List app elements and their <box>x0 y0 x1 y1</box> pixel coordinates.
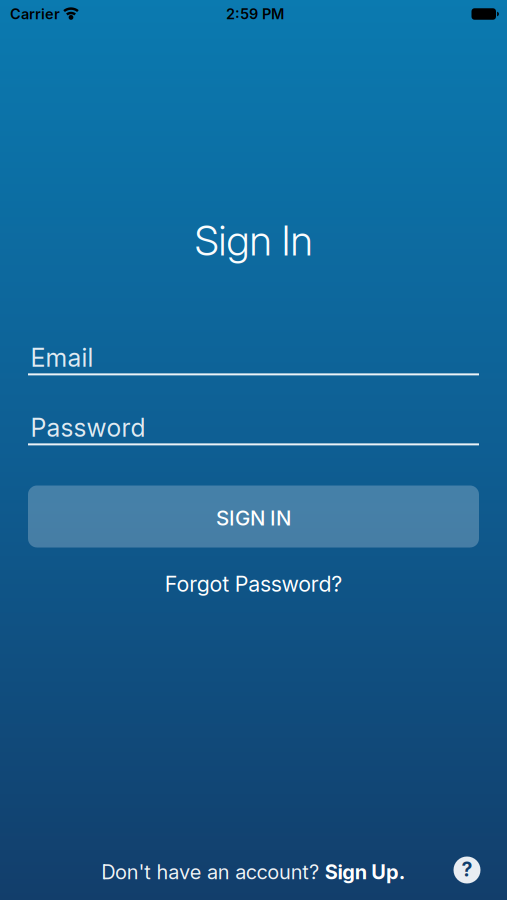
button[interactable]: Password <box>28 413 479 445</box>
staticText: SIGN IN <box>216 506 291 530</box>
staticText: Forgot Password? <box>165 571 342 597</box>
button[interactable]: Help <box>453 856 480 883</box>
button[interactable]: SIGN IN <box>28 485 479 547</box>
staticText: ? <box>461 858 472 881</box>
button[interactable]: Email <box>28 343 479 375</box>
staticText: Sign In <box>194 216 312 265</box>
staticText: Don't have an account? <box>101 860 325 884</box>
button[interactable]: Forgot Password? <box>165 571 342 597</box>
button[interactable]: Don't have an account? <box>101 860 406 884</box>
staticText: Password <box>30 413 145 443</box>
staticText: 2:59 PM <box>226 5 284 23</box>
staticText: Sign Up. <box>325 860 406 884</box>
staticText: Carrier <box>10 5 60 23</box>
staticText: Email <box>30 343 93 373</box>
